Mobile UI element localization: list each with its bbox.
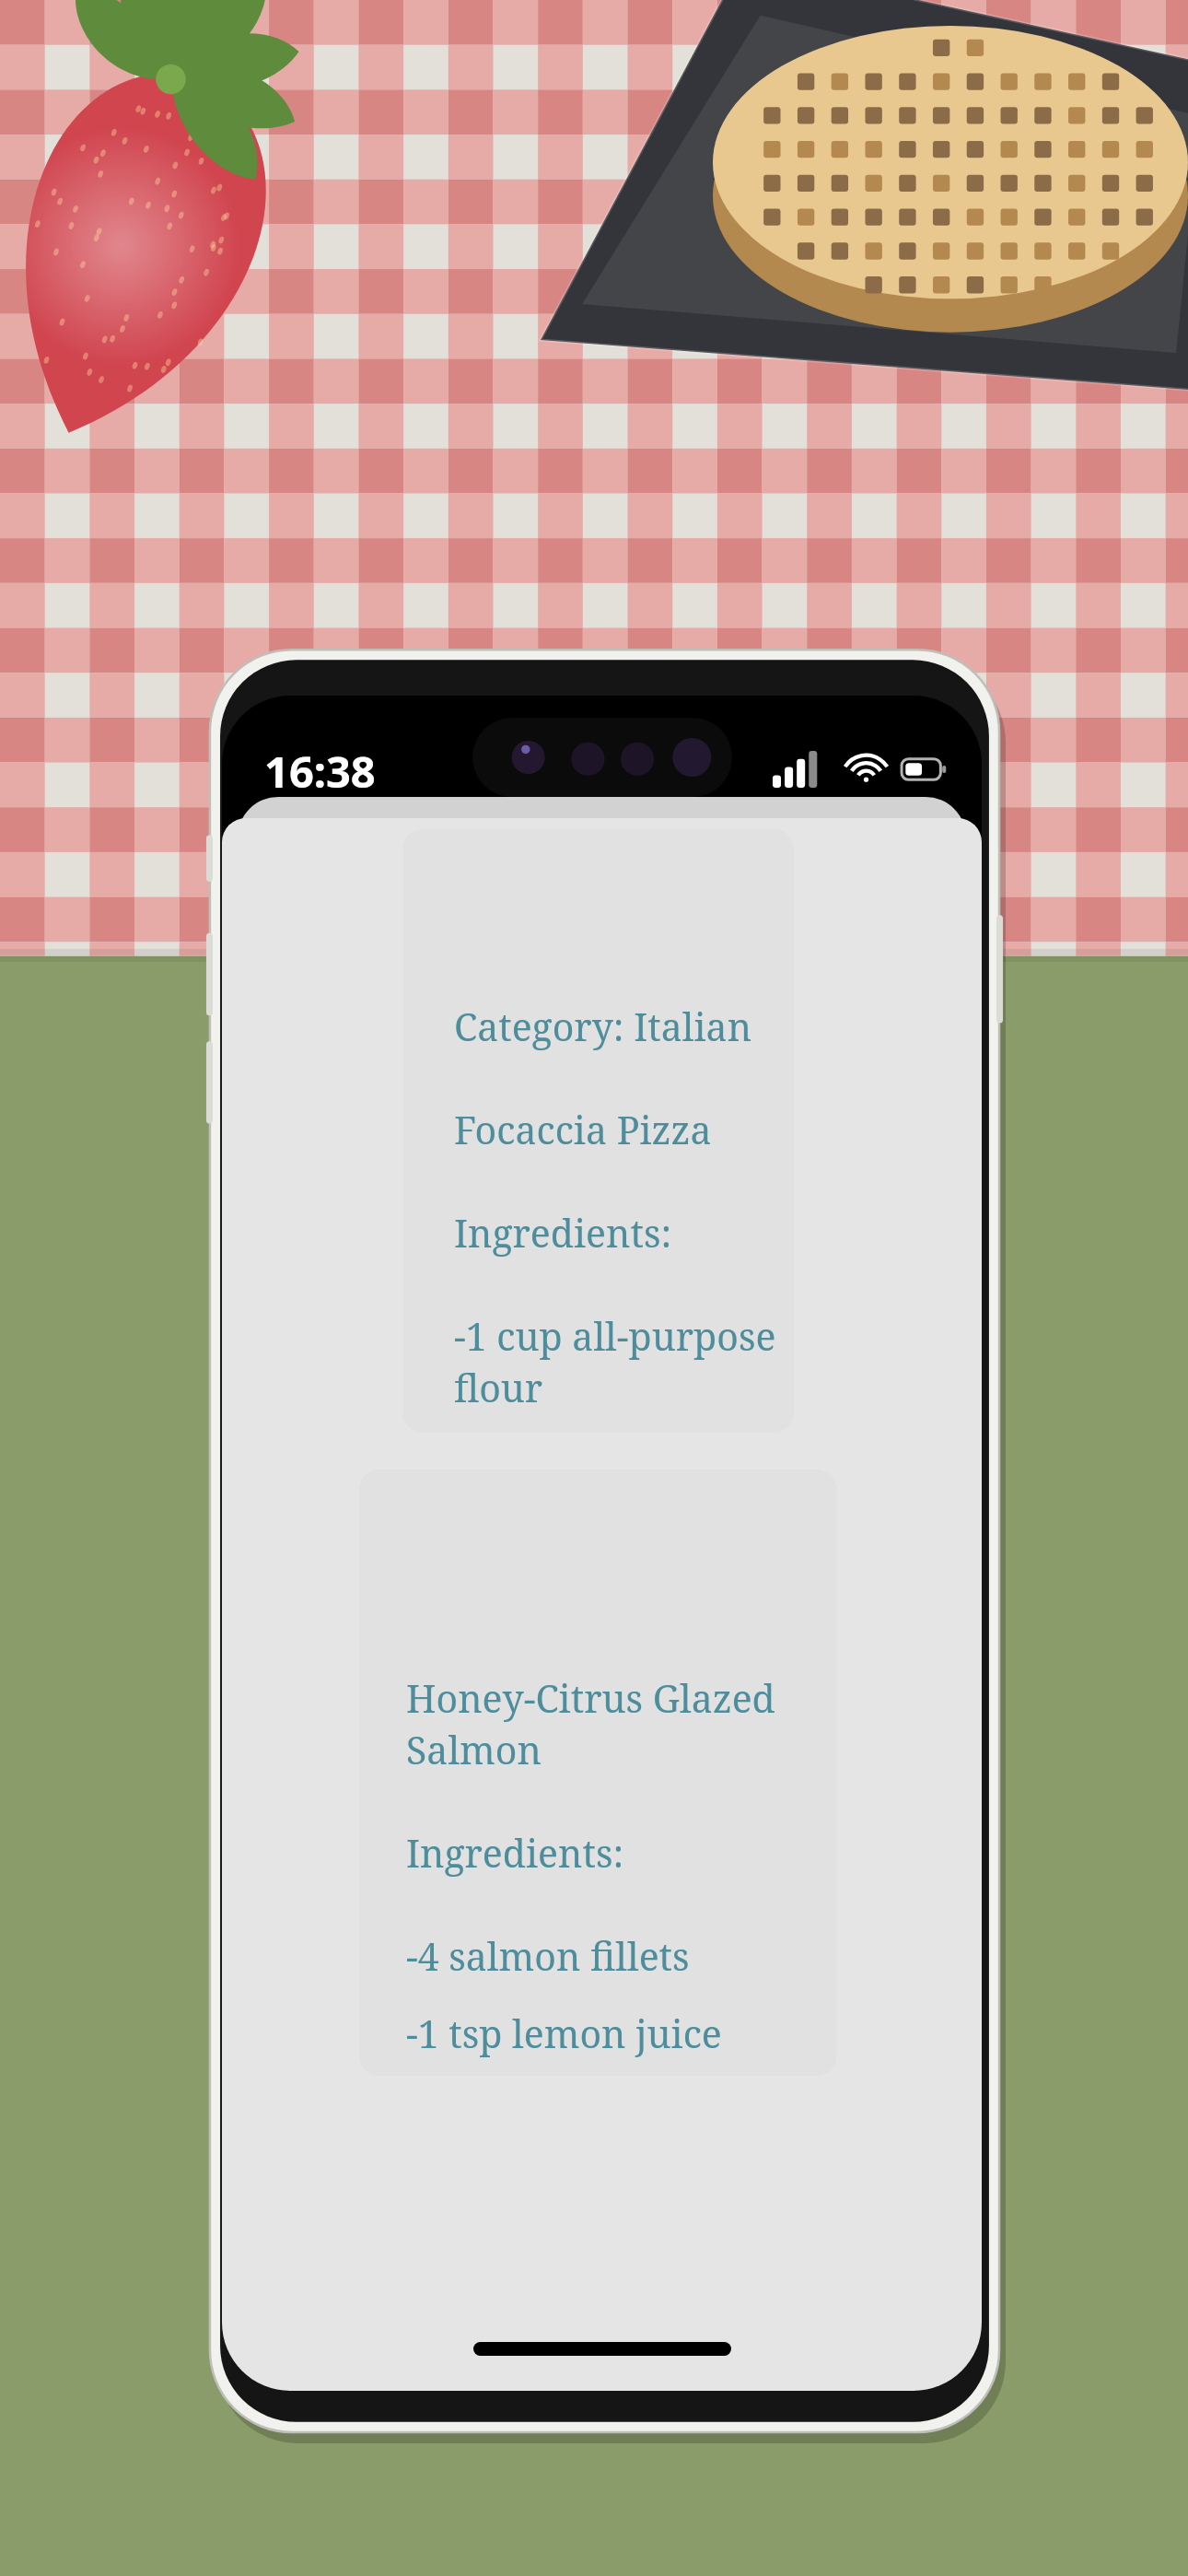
staticText: -1 cup all-purpose flour [454,1310,794,1413]
staticText: Ingredients: [454,1207,672,1259]
staticText: Category: Italian [454,1001,752,1052]
staticText: 16:38 [264,742,376,801]
staticText: Focaccia Pizza [454,1104,712,1155]
staticText: -4 salmon fillets [406,1930,690,1982]
other: Home indicator [473,2342,731,2356]
button[interactable]: Category: Italian [402,829,794,1433]
button[interactable]: Honey-Citrus Glazed Salmon [359,1469,837,2076]
staticText: -1 tsp lemon juice [406,2008,722,2059]
staticText: Honey-Citrus Glazed Salmon [406,1672,837,1775]
other: Signal, Wi-Fi and battery status [773,751,946,788]
staticText: Ingredients: [406,1827,624,1879]
